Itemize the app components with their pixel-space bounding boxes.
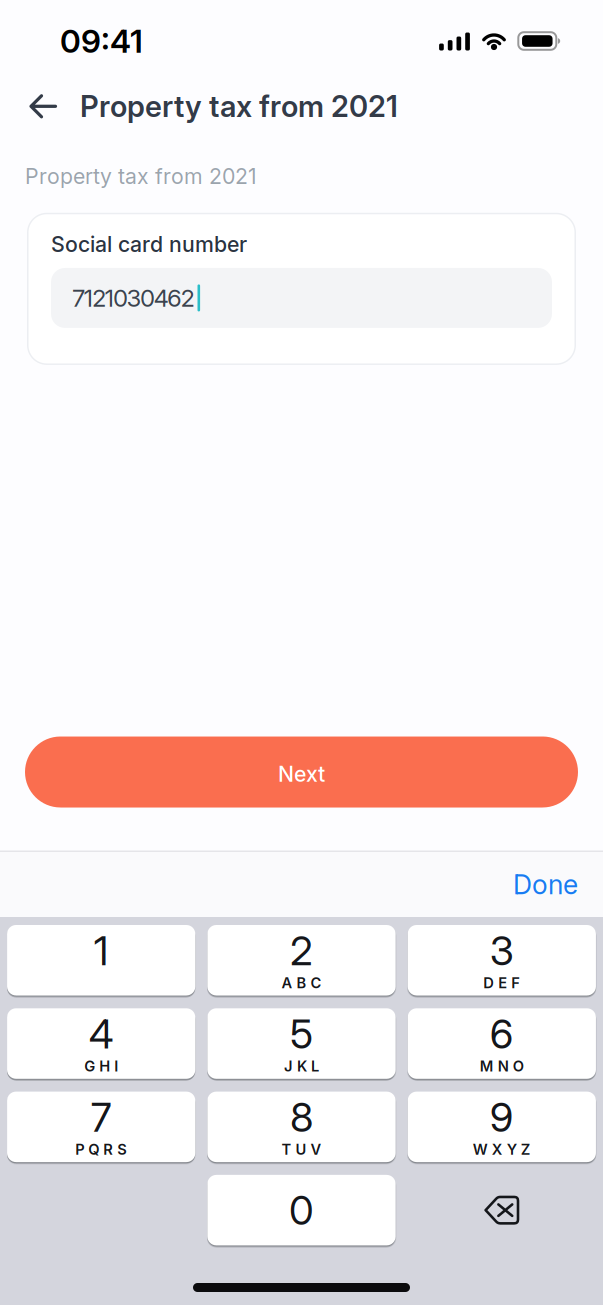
button[interactable]: Done: [513, 869, 578, 900]
button[interactable]: Back: [28, 93, 58, 120]
staticText: Next: [278, 761, 325, 787]
button[interactable]: 8: [207, 1092, 396, 1162]
staticText: G H I: [84, 1057, 118, 1075]
staticText: D E F: [483, 974, 520, 991]
staticText: Social card number: [51, 232, 247, 257]
staticText: 5: [290, 1010, 313, 1057]
button[interactable]: 6: [408, 1008, 596, 1079]
button[interactable]: 7: [7, 1092, 195, 1162]
staticText: 09:41: [60, 22, 143, 60]
staticText: 8: [290, 1094, 313, 1141]
staticText: 3: [490, 927, 514, 974]
staticText: 4: [89, 1010, 114, 1057]
button[interactable]: 1: [7, 925, 195, 995]
staticText: W X Y Z: [473, 1141, 531, 1158]
staticText: T U V: [281, 1141, 321, 1158]
button[interactable]: 0: [207, 1175, 396, 1245]
staticText: Property tax from 2021: [80, 89, 398, 124]
staticText: 7121030462: [72, 284, 194, 312]
staticText: A B C: [281, 974, 321, 991]
button[interactable]: 9: [408, 1092, 596, 1162]
staticText: 1: [94, 927, 109, 974]
button[interactable]: Social card number field: [51, 268, 552, 328]
staticText: 0: [289, 1187, 314, 1234]
button[interactable]: 3: [408, 925, 596, 995]
staticText: 9: [490, 1094, 514, 1141]
staticText: Done: [513, 869, 578, 900]
staticText: M N O: [480, 1057, 524, 1075]
staticText: 2: [290, 927, 313, 974]
staticText: 7: [91, 1094, 112, 1141]
button[interactable]: 2: [207, 925, 396, 995]
staticText: Property tax from 2021: [25, 164, 257, 189]
button[interactable]: Delete: [408, 1175, 596, 1245]
staticText: J K L: [284, 1057, 319, 1075]
button[interactable]: 4: [7, 1008, 195, 1079]
staticText: P Q R S: [75, 1141, 127, 1158]
button[interactable]: 5: [207, 1008, 396, 1079]
button[interactable]: Next: [25, 736, 578, 807]
staticText: 6: [490, 1010, 514, 1057]
